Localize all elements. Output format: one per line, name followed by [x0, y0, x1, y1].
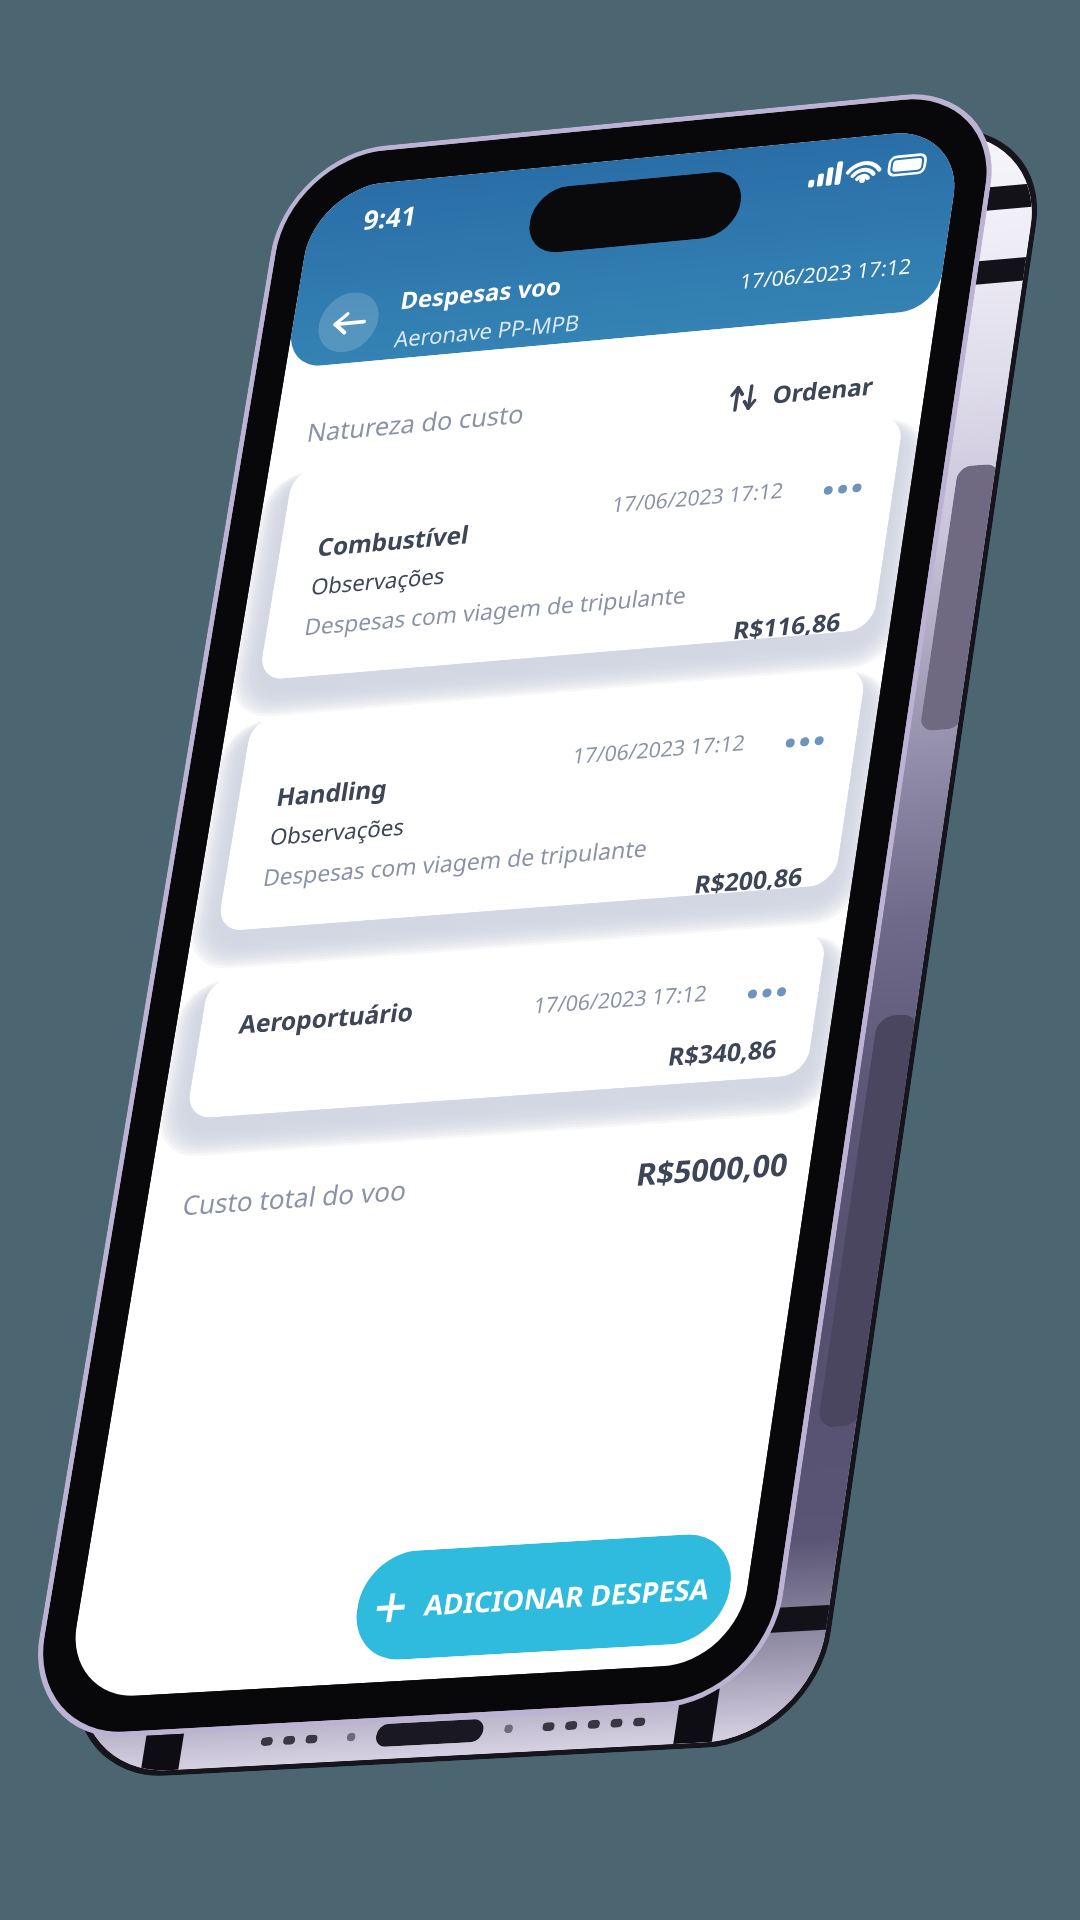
staticText: 17/06/2023 17:12	[233, 372, 334, 389]
staticText: 17/06/2023 17:12	[233, 517, 334, 534]
button[interactable]: ADICIONAR DESPESA	[185, 834, 399, 895]
button[interactable]: Ordenar	[289, 161, 382, 188]
button[interactable]: 17/06/2023 17:12	[36, 194, 399, 320]
button[interactable]: 17/06/2023 17:12	[36, 342, 399, 468]
button[interactable]: More options	[350, 223, 388, 247]
staticText: 17/06/2023 17:12	[233, 224, 334, 241]
staticText: R$5000,00	[309, 615, 397, 639]
staticText: R$340,86	[317, 551, 380, 570]
button[interactable]: 17/06/2023 17:12	[36, 495, 399, 577]
staticText: Ordenar	[319, 165, 378, 184]
button[interactable]: More options	[350, 516, 388, 540]
staticText: ADICIONAR DESPESA	[224, 854, 388, 876]
staticText: Despesas com viagem de tripulante	[59, 429, 286, 447]
staticText: R$116,86	[317, 304, 380, 320]
staticText: Despesas com viagem de tripulante	[59, 281, 286, 299]
